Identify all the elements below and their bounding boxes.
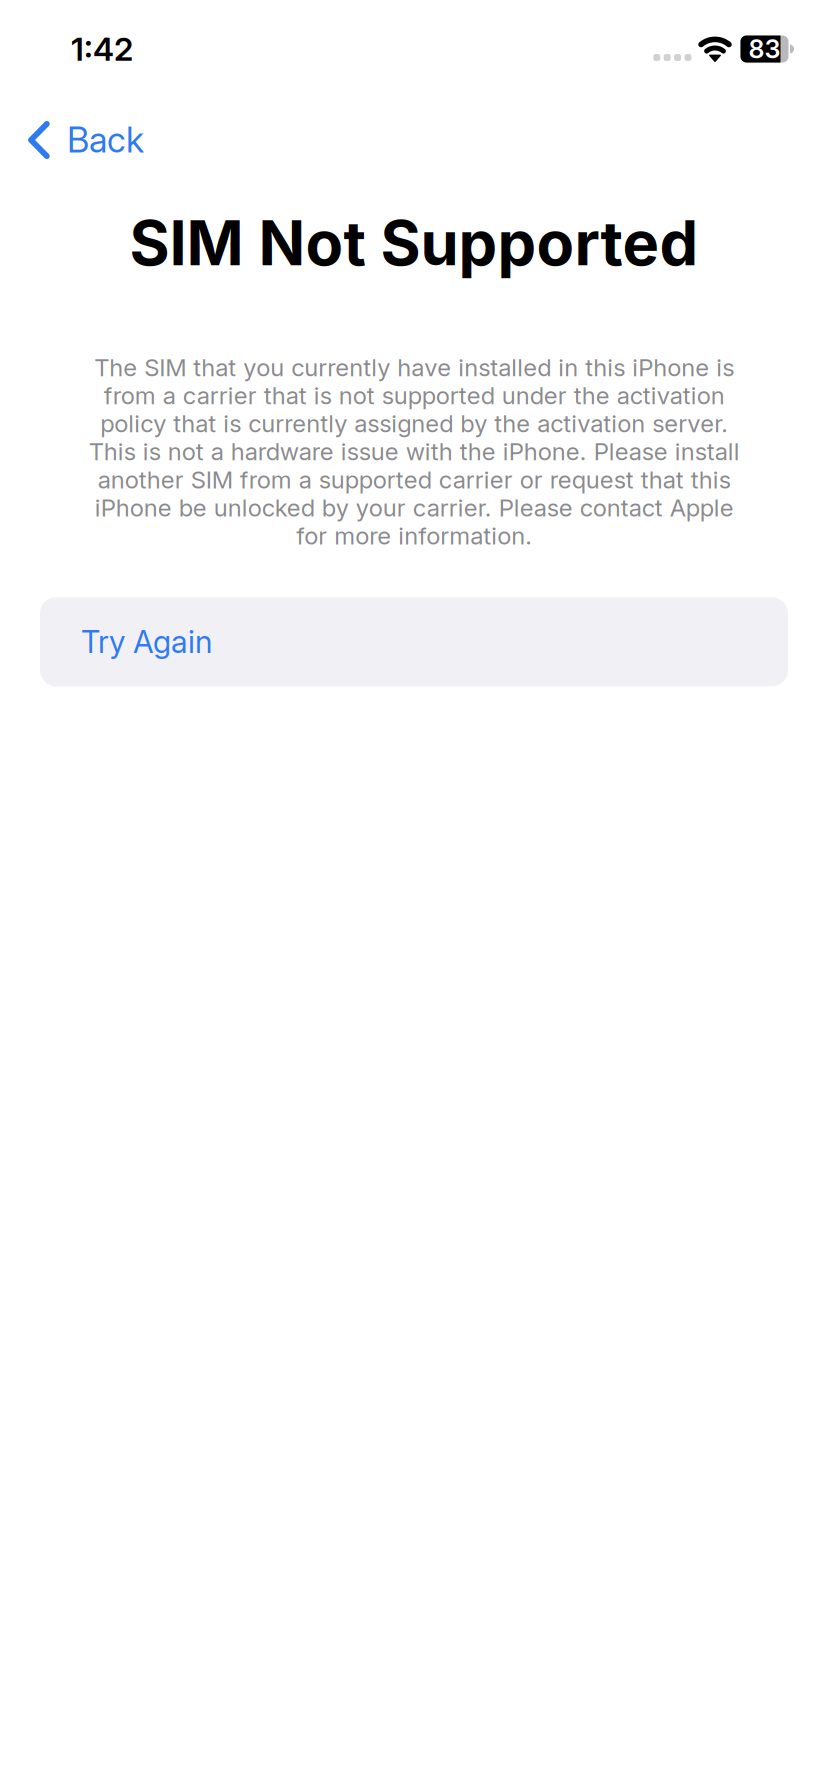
staticText: Back [67, 119, 144, 161]
staticText: The SIM that you currently have installe… [88, 353, 739, 550]
staticText: Try Again [81, 623, 212, 660]
staticText: 1:42 [71, 30, 133, 68]
button[interactable]: Back [0, 98, 160, 182]
staticText: SIM Not Supported [129, 206, 698, 280]
staticText: 83 [748, 34, 780, 64]
button[interactable]: Try Again [40, 597, 788, 686]
